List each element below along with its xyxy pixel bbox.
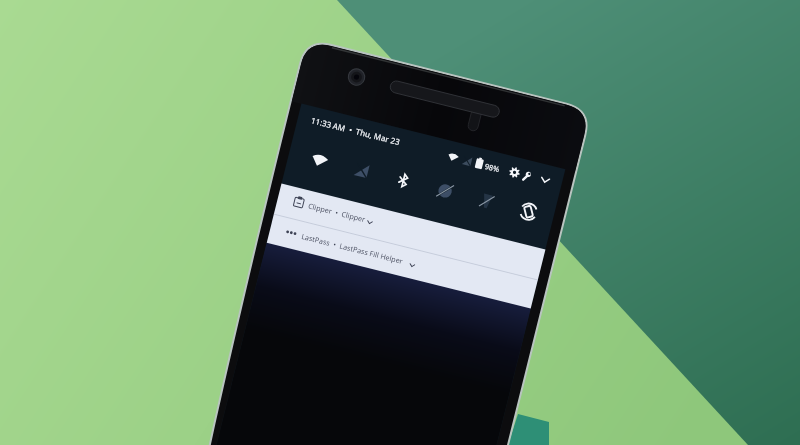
button[interactable]: Auto-rotate <box>503 188 554 235</box>
button[interactable]: Flashlight off <box>461 178 512 225</box>
button[interactable]: Status bar <box>295 103 476 172</box>
button[interactable]: LastPass notification <box>267 214 538 309</box>
button[interactable]: Mobile data off <box>336 146 387 194</box>
button[interactable]: Settings <box>501 160 537 189</box>
button[interactable]: Expand quick settings <box>534 168 560 195</box>
button[interactable]: Do not disturb off <box>420 167 470 215</box>
button[interactable]: Bluetooth <box>378 157 429 204</box>
button[interactable]: Wi-Fi <box>294 136 345 183</box>
button[interactable]: Clipper notification <box>274 184 545 281</box>
button[interactable]: Wi-Fi <box>0 0 800 445</box>
